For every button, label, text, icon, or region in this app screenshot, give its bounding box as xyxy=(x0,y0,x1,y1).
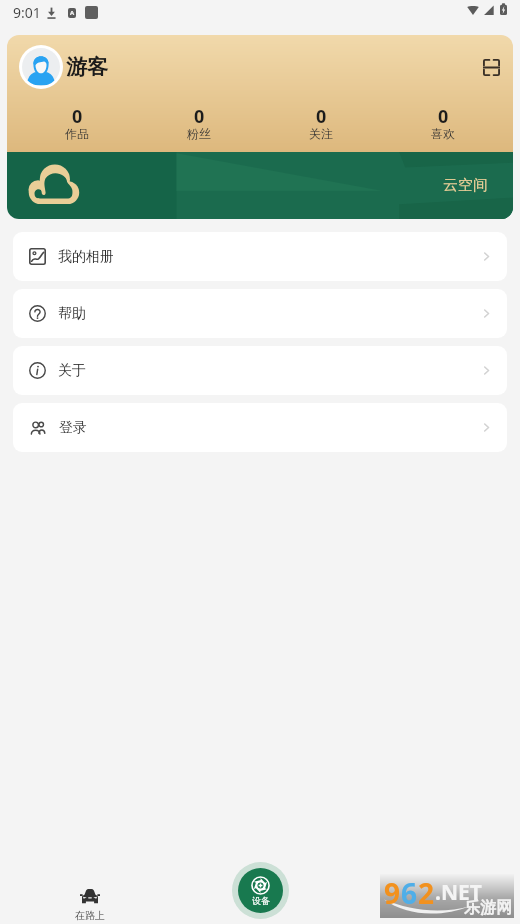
staticText: 0 xyxy=(194,104,205,129)
staticText: 关注 xyxy=(309,126,333,141)
button[interactable]: 关于 xyxy=(13,346,507,395)
staticText: .NET xyxy=(435,878,482,907)
staticText: 帮助 xyxy=(58,305,86,323)
staticText: 9:01 xyxy=(13,3,41,22)
staticText: 0 xyxy=(438,104,449,129)
button[interactable]: 0 xyxy=(382,104,504,144)
staticText: 喜欢 xyxy=(431,126,455,141)
staticText: 乐游网 xyxy=(464,898,512,918)
staticText: 6 xyxy=(401,874,418,912)
button[interactable]: 我的相册 xyxy=(13,232,507,281)
staticText: 在路上 xyxy=(75,909,105,922)
button[interactable]: 0 xyxy=(138,104,260,144)
staticText: 2 xyxy=(418,874,435,912)
button[interactable]: 扫一扫 xyxy=(476,52,507,83)
button[interactable]: 云空间 xyxy=(7,152,513,219)
button[interactable]: 设备 xyxy=(238,868,283,913)
staticText: 粉丝 xyxy=(187,126,211,141)
staticText: 9 xyxy=(384,874,401,912)
staticText: 0 xyxy=(72,104,83,129)
staticText: A xyxy=(70,9,75,17)
button[interactable]: 0 xyxy=(260,104,382,144)
staticText: 关于 xyxy=(58,362,86,380)
staticText: 游客 xyxy=(66,54,108,80)
button[interactable]: 帮助 xyxy=(13,289,507,338)
staticText: 0 xyxy=(316,104,327,129)
button[interactable]: 在路上 xyxy=(65,886,115,924)
staticText: 云空间 xyxy=(443,176,488,195)
staticText: 我的相册 xyxy=(58,248,114,266)
button[interactable]: 0 xyxy=(16,104,138,144)
staticText: 登录 xyxy=(59,419,87,437)
staticText: 设备 xyxy=(252,895,270,906)
button[interactable]: 登录 xyxy=(13,403,507,452)
staticText: 作品 xyxy=(65,126,89,141)
